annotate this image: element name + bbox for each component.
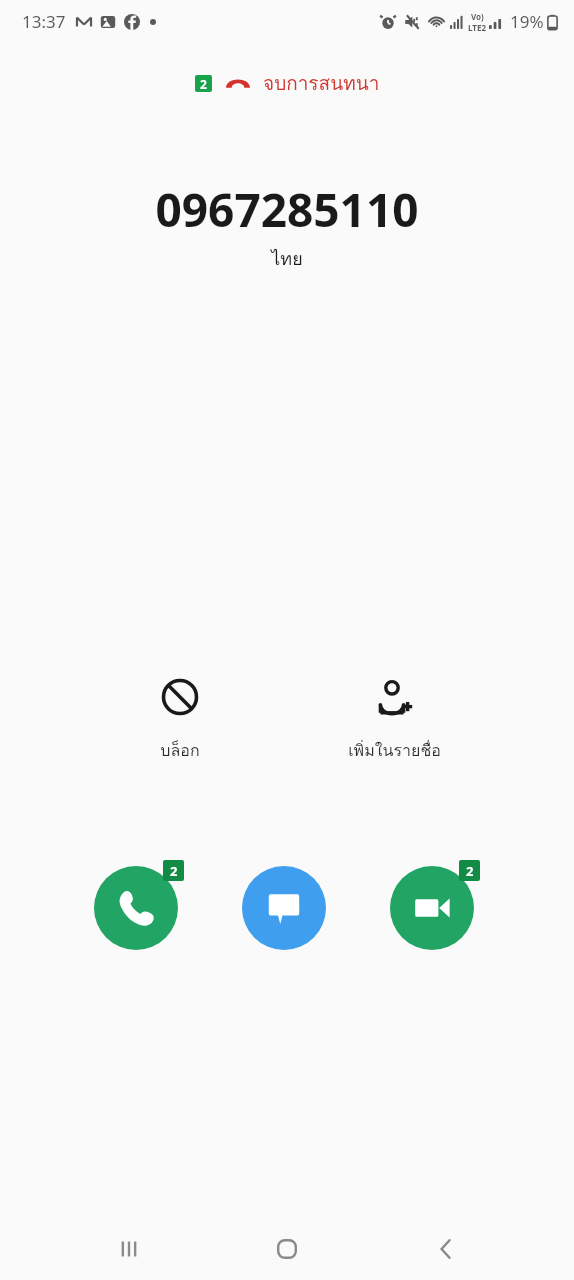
button[interactable]: Back — [416, 1219, 476, 1279]
staticText: ไทย — [271, 244, 303, 273]
button[interactable]: Block — [105, 676, 255, 763]
staticText: Vo) — [471, 11, 484, 22]
staticText: LTE2 — [468, 22, 486, 33]
staticText: 13:37 — [22, 10, 66, 33]
staticText: 2 — [466, 862, 474, 880]
button[interactable]: 2 — [195, 68, 380, 98]
staticText: บล็อก — [160, 738, 200, 763]
button[interactable]: Video call — [390, 860, 480, 950]
other: End call — [225, 72, 251, 94]
staticText: 0967285110 — [155, 178, 419, 241]
button[interactable]: Home — [257, 1219, 317, 1279]
button[interactable]: Message — [242, 860, 332, 950]
button[interactable]: Recent apps — [99, 1219, 159, 1279]
button[interactable]: Call — [94, 860, 184, 950]
staticText: จบการสนทนา — [263, 68, 380, 98]
staticText: 19% — [510, 10, 544, 33]
staticText: 2 — [170, 862, 178, 880]
staticText: 2 — [200, 76, 207, 92]
button[interactable]: Add to contacts — [319, 676, 469, 763]
staticText: เพิ่มในรายชื่อ — [348, 738, 441, 763]
